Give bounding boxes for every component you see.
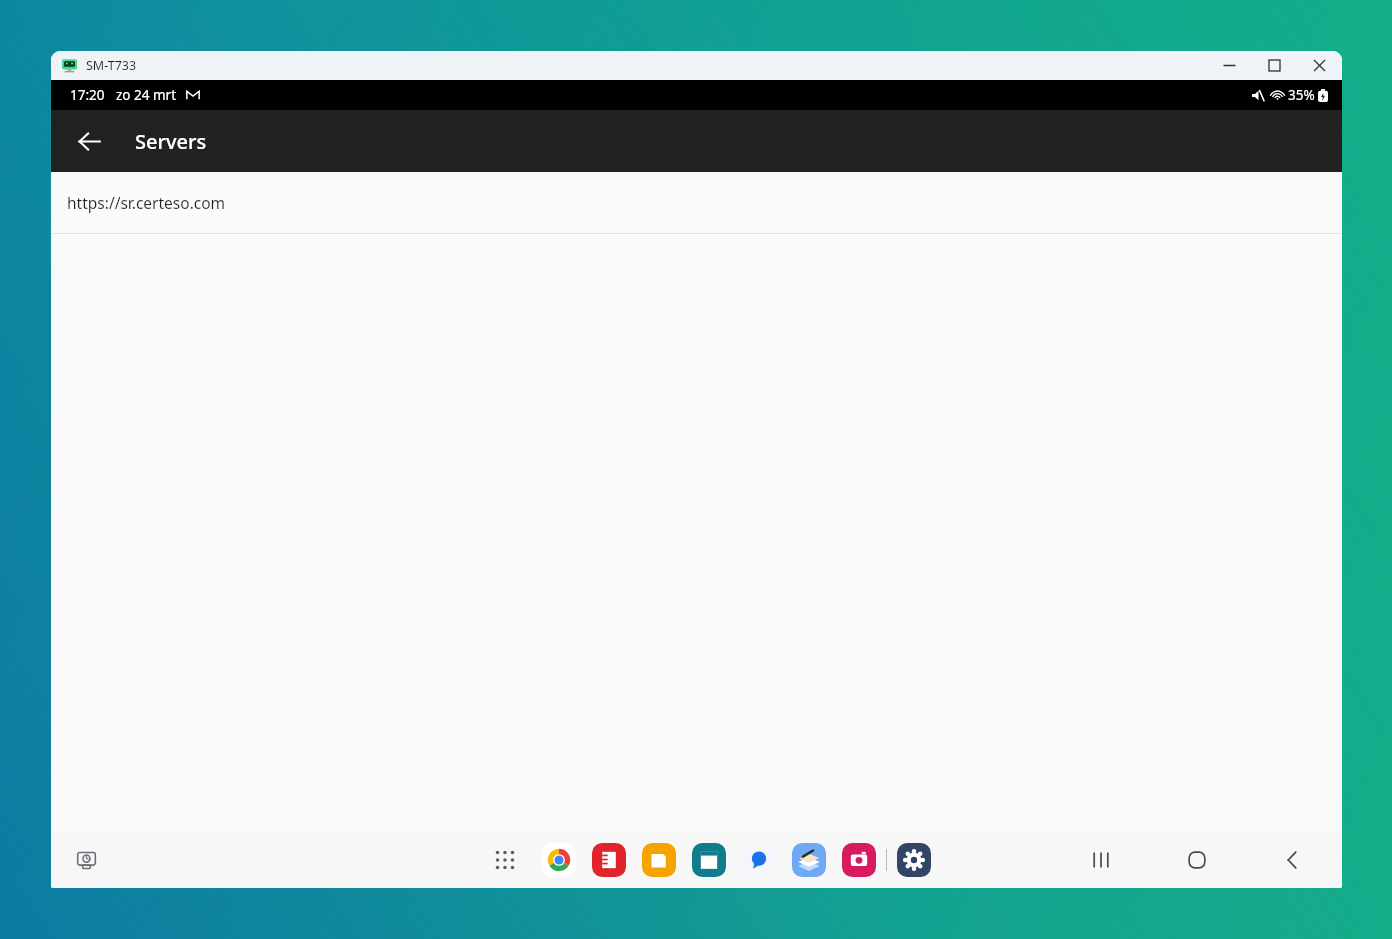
button[interactable]: Back	[1276, 843, 1310, 877]
button[interactable]: Home	[1180, 843, 1214, 877]
button[interactable]: All apps	[485, 840, 525, 880]
button[interactable]: Minimize	[1207, 51, 1252, 80]
staticText: 17:20	[70, 86, 105, 104]
staticText: SM-T733	[86, 57, 137, 74]
button[interactable]: Chrome	[539, 840, 579, 880]
button[interactable]: Settings	[894, 840, 934, 880]
staticText: https://sr.certeso.com	[67, 192, 226, 213]
staticText: zo 24 mrt	[116, 86, 177, 104]
staticText: Servers	[135, 128, 207, 155]
button[interactable]: Calendar	[689, 840, 729, 880]
staticText: 35%	[1288, 86, 1315, 104]
button[interactable]: Messages	[739, 840, 779, 880]
button[interactable]: Recents	[1084, 843, 1118, 877]
button[interactable]: Maximize	[1252, 51, 1297, 80]
button[interactable]: Recent apps	[67, 841, 105, 879]
button[interactable]: Notes	[589, 840, 629, 880]
button[interactable]: Notes stack	[789, 840, 829, 880]
button[interactable]: https://sr.certeso.com	[51, 172, 1342, 234]
button[interactable]: Close	[1297, 51, 1342, 80]
button[interactable]: Back	[65, 117, 113, 165]
button[interactable]: My Files	[639, 840, 679, 880]
button[interactable]: Camera	[839, 840, 879, 880]
